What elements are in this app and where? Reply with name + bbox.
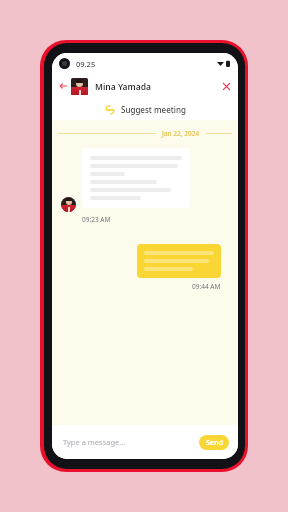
staticText: 09.25 [76, 59, 96, 69]
button[interactable]: Suggest meeting [52, 98, 238, 120]
staticText: Type a message... [63, 437, 126, 447]
button[interactable] [137, 244, 221, 278]
button[interactable]: Close [219, 79, 233, 93]
staticText: 09:23 AM [82, 215, 111, 224]
staticText: Suggest meeting [121, 104, 186, 115]
button[interactable] [82, 148, 190, 208]
button[interactable]: Type a message... [63, 437, 126, 447]
staticText: Mina Yamada [95, 81, 152, 93]
staticText: Jan 22, 2024 [162, 129, 200, 138]
button[interactable]: Send [199, 435, 229, 450]
button[interactable]: Back [56, 79, 70, 93]
staticText: Send [206, 438, 223, 448]
button[interactable]: Mina Yamada [71, 78, 152, 95]
staticText: 09:44 AM [192, 282, 221, 291]
